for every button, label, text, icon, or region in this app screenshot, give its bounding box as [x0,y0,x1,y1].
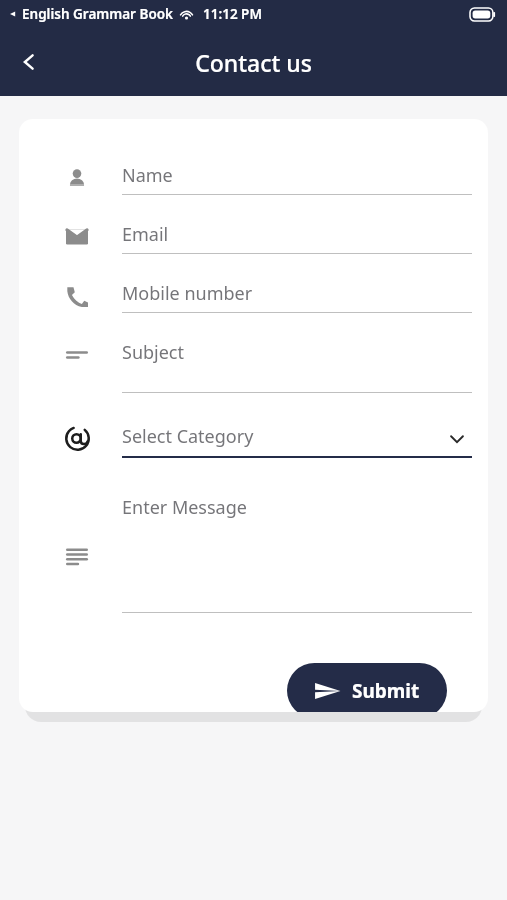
button[interactable]: Submit [287,663,447,712]
staticText: Enter Message [122,495,247,520]
staticText: 11:12 PM [203,5,262,23]
staticText: Name [122,163,173,188]
staticText: Subject [122,340,185,365]
button[interactable]: Back [9,42,49,82]
button[interactable]: Mobile number [19,276,488,335]
staticText: Mobile number [122,281,253,306]
staticText: Submit [352,678,420,704]
button[interactable]: Select Category [19,418,488,479]
button[interactable]: Email [19,217,488,276]
staticText: English Grammar Book [22,5,173,23]
staticText: Contact us [195,47,312,78]
button[interactable]: Name [19,158,488,217]
staticText: Select Category [122,424,254,449]
button[interactable]: Subject [19,335,488,399]
staticText: Email [122,222,169,247]
button[interactable]: Enter Message [19,479,488,640]
